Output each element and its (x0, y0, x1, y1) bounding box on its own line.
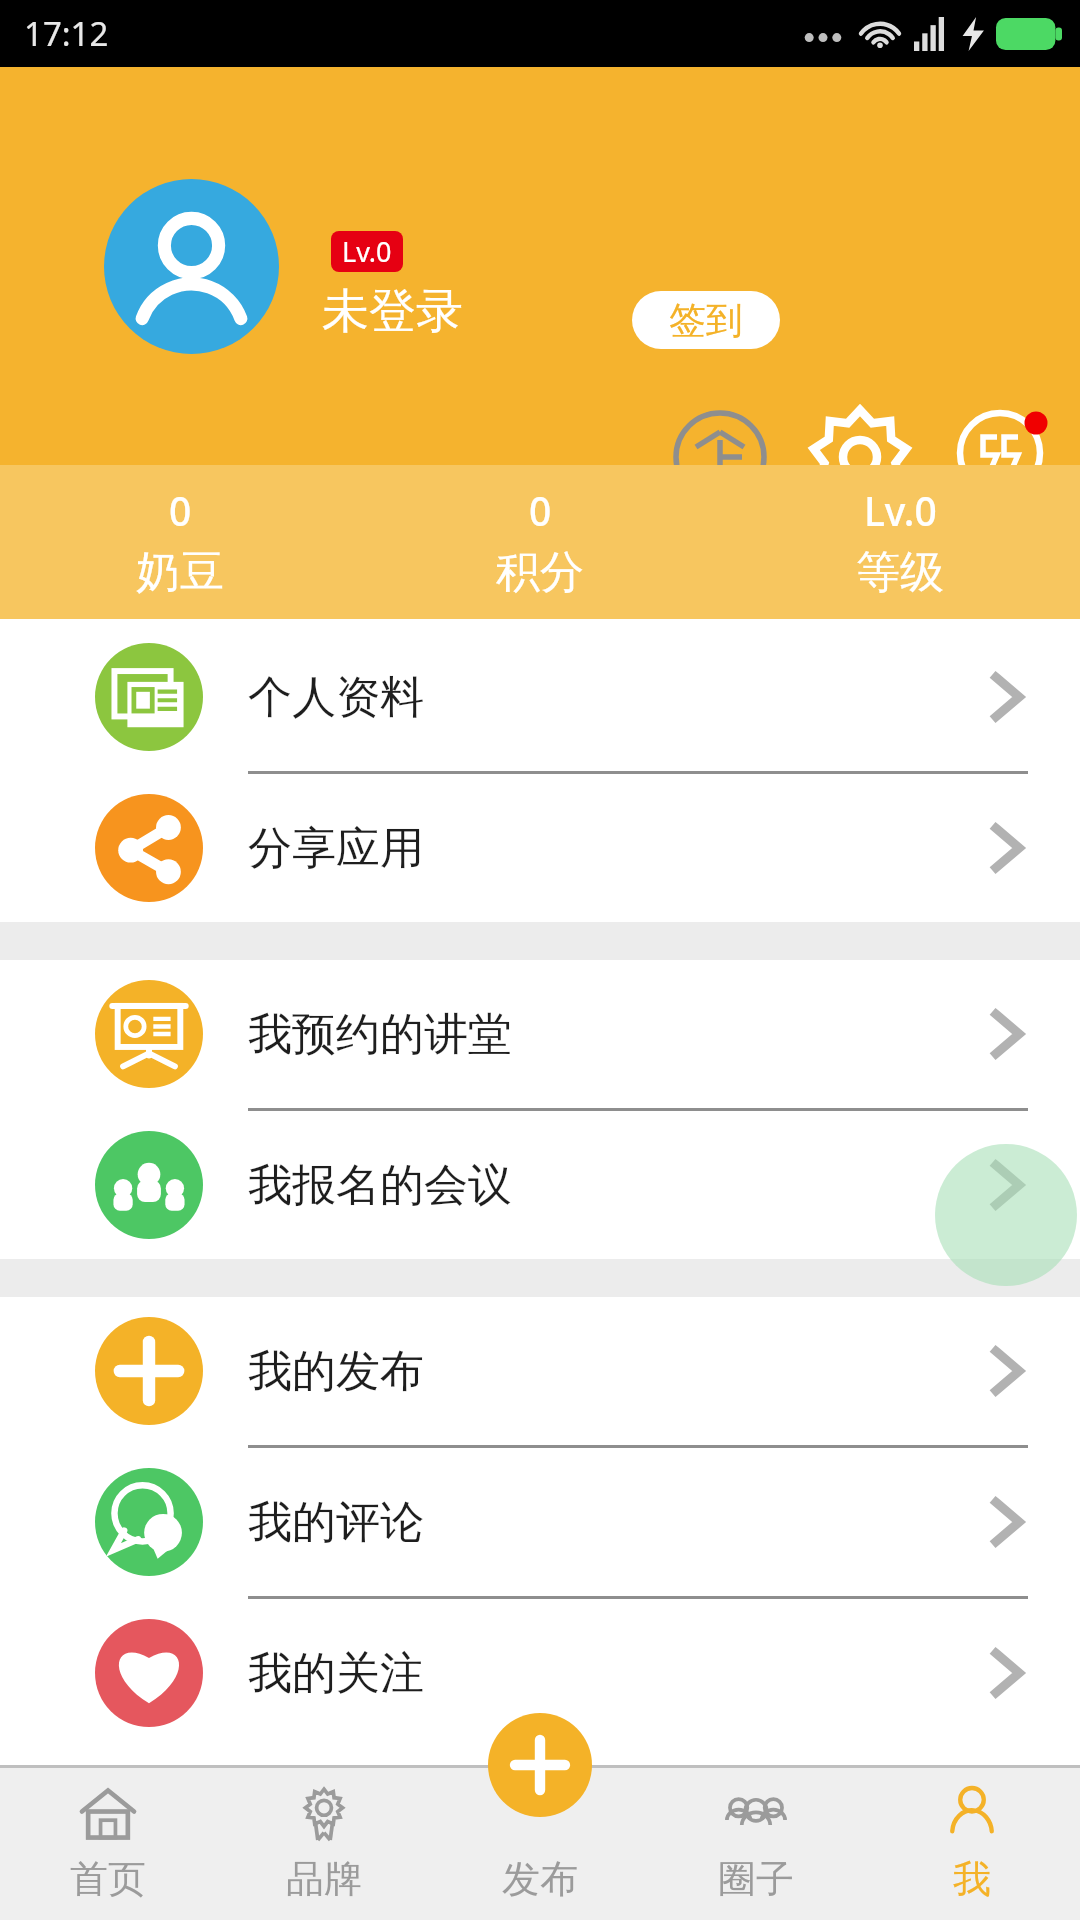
staticText: 17:12 (24, 11, 109, 56)
staticText: 我的评论 (248, 1495, 424, 1550)
staticText: 我预约的讲堂 (248, 1007, 512, 1062)
staticText: 个人资料 (248, 670, 424, 725)
button[interactable]: 0 (360, 465, 720, 619)
button[interactable]: 我报名的会议 (0, 1111, 1080, 1259)
staticText: 发布 (502, 1855, 578, 1903)
staticText: 未登录 (322, 282, 463, 341)
staticText: Lv.0 (342, 233, 392, 270)
button[interactable]: 分享应用 (0, 774, 1080, 922)
staticText: 等级 (856, 545, 944, 600)
button[interactable]: 设置 (810, 407, 910, 507)
button[interactable]: 头像 (104, 179, 279, 354)
staticText: 品牌 (286, 1855, 362, 1903)
staticText: 0 (169, 484, 192, 537)
button[interactable]: 个人资料 (0, 623, 1080, 771)
button[interactable]: 我的评论 (0, 1448, 1080, 1596)
staticText: 签到 (669, 297, 743, 344)
button[interactable]: Lv.0 (720, 465, 1080, 619)
staticText: 首页 (70, 1855, 146, 1903)
staticText: 圈子 (718, 1855, 794, 1903)
button[interactable]: 我的关注 (0, 1599, 1080, 1747)
button[interactable]: 我 (864, 1765, 1080, 1920)
button[interactable]: 发布 (432, 1765, 648, 1920)
button[interactable]: 圈子 (648, 1765, 864, 1920)
staticText: 我 (953, 1855, 991, 1903)
staticText: Lv.0 (864, 484, 937, 537)
button[interactable]: 首页 (0, 1765, 216, 1920)
staticText: 积分 (496, 545, 584, 600)
button[interactable]: 我的发布 (0, 1297, 1080, 1445)
button[interactable]: 签到 (632, 291, 780, 349)
staticText: 0 (529, 484, 552, 537)
staticText: 奶豆 (136, 545, 224, 600)
button[interactable]: 发布 (488, 1713, 592, 1817)
button[interactable]: 企业 (670, 407, 770, 507)
button[interactable]: 0 (0, 465, 360, 619)
staticText: 分享应用 (248, 821, 424, 876)
button[interactable]: 品牌 (216, 1765, 432, 1920)
staticText: 我的关注 (248, 1646, 424, 1701)
button[interactable]: 我预约的讲堂 (0, 960, 1080, 1108)
staticText: 我的发布 (248, 1344, 424, 1399)
staticText: 我报名的会议 (248, 1158, 512, 1213)
button[interactable]: 消息 (950, 407, 1050, 507)
